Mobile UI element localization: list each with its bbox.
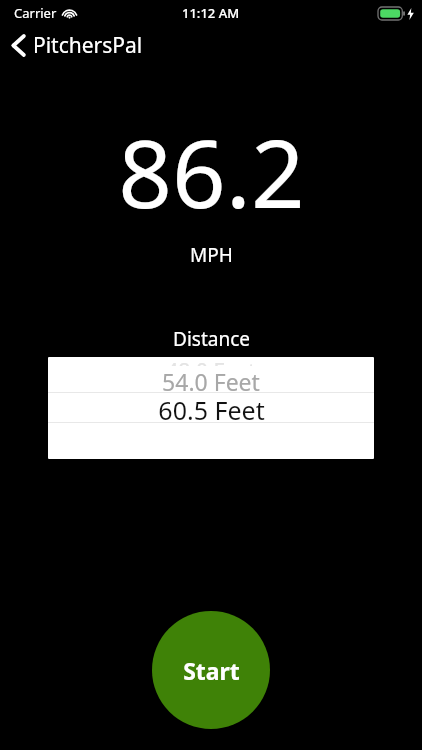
button[interactable]: Start (152, 611, 270, 729)
button[interactable]: Back to PitchersPal (11, 29, 153, 62)
staticText: Start (183, 655, 240, 686)
staticText: 48.0 Feet (166, 357, 256, 366)
staticText: 11:12 AM (182, 4, 240, 22)
staticText: 54.0 Feet (162, 366, 260, 397)
staticText: Distance (173, 326, 250, 352)
staticText: PitchersPal (33, 31, 143, 60)
staticText: Carrier (14, 4, 57, 22)
button[interactable]: 48.0 Feet (48, 357, 374, 459)
staticText: MPH (190, 242, 233, 268)
staticText: 86.2 (118, 108, 305, 236)
staticText: 60.5 Feet (158, 393, 265, 422)
